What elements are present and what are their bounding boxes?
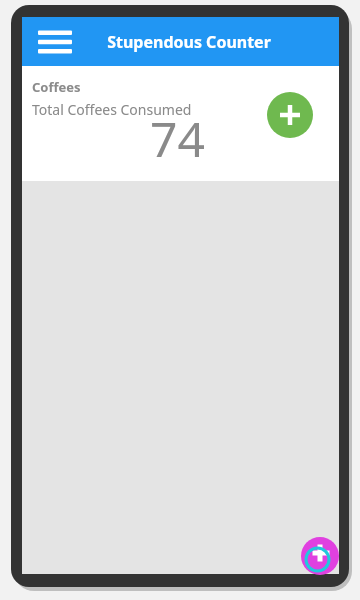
button[interactable]: Add new counter (301, 537, 339, 575)
staticText: Total Coffees Consumed (32, 100, 192, 119)
button[interactable]: Open navigation menu (34, 21, 76, 63)
button[interactable]: Coffees (22, 66, 339, 181)
staticText: 74 (150, 106, 205, 171)
button[interactable]: Add coffee (267, 92, 313, 138)
staticText: Stupendous Counter (107, 31, 271, 53)
staticText: Coffees (32, 78, 81, 96)
